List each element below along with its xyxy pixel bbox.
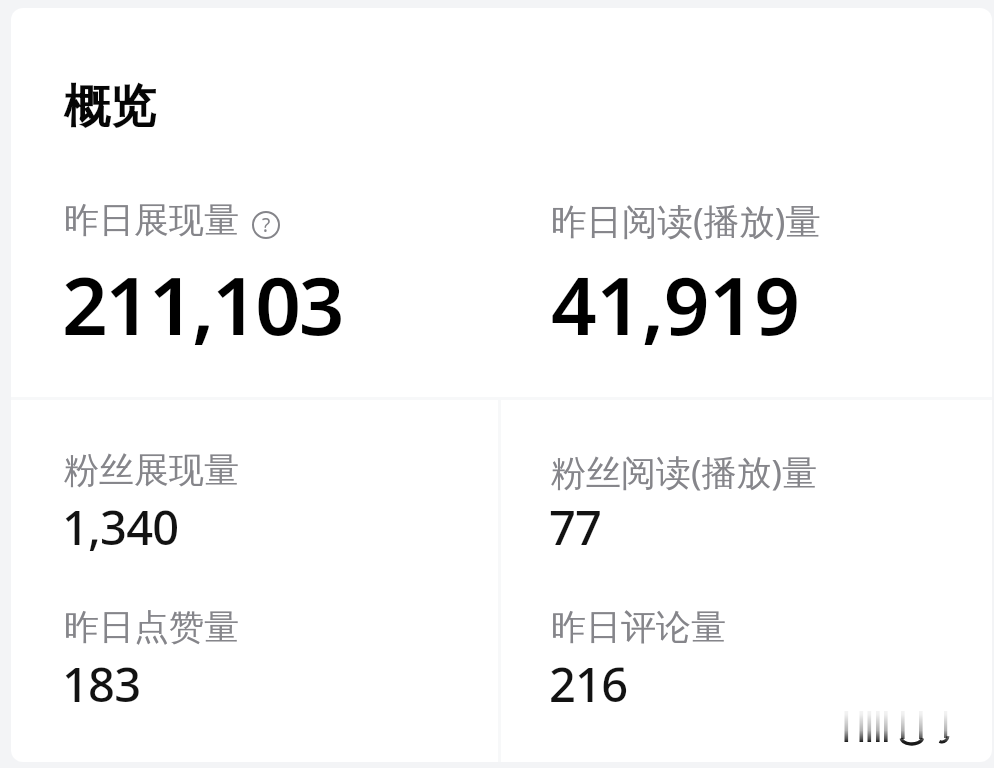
staticText: 41,919 xyxy=(551,249,800,358)
staticText: 昨日点赞量 xyxy=(64,605,239,649)
staticText: 183 xyxy=(62,652,141,716)
button[interactable]: 粉丝展现量 xyxy=(11,400,499,557)
button[interactable]: 昨日展现量 xyxy=(11,168,499,397)
staticText: 216 xyxy=(549,652,628,716)
button[interactable]: 粉丝阅读(播放)量 xyxy=(502,400,992,557)
staticText: 昨日展现量 xyxy=(64,198,239,242)
staticText: 粉丝阅读(播放)量 xyxy=(551,448,818,496)
staticText: 概览 xyxy=(64,78,156,136)
staticText: ? xyxy=(262,212,271,238)
staticText: 昨日评论量 xyxy=(551,605,726,649)
staticText: 211,103 xyxy=(62,249,343,358)
staticText: 粉丝展现量 xyxy=(64,448,239,492)
button[interactable]: 昨日点赞量 xyxy=(11,557,499,714)
staticText: 1,340 xyxy=(62,495,179,559)
staticText: 昨日阅读(播放)量 xyxy=(551,196,821,244)
staticText: 77 xyxy=(549,495,602,559)
button[interactable]: 昨日评论量 xyxy=(502,557,992,714)
button[interactable]: 昨日阅读(播放)量 xyxy=(502,168,992,397)
button[interactable]: 指标说明 xyxy=(252,211,280,239)
button[interactable]: 概览 xyxy=(31,38,331,158)
